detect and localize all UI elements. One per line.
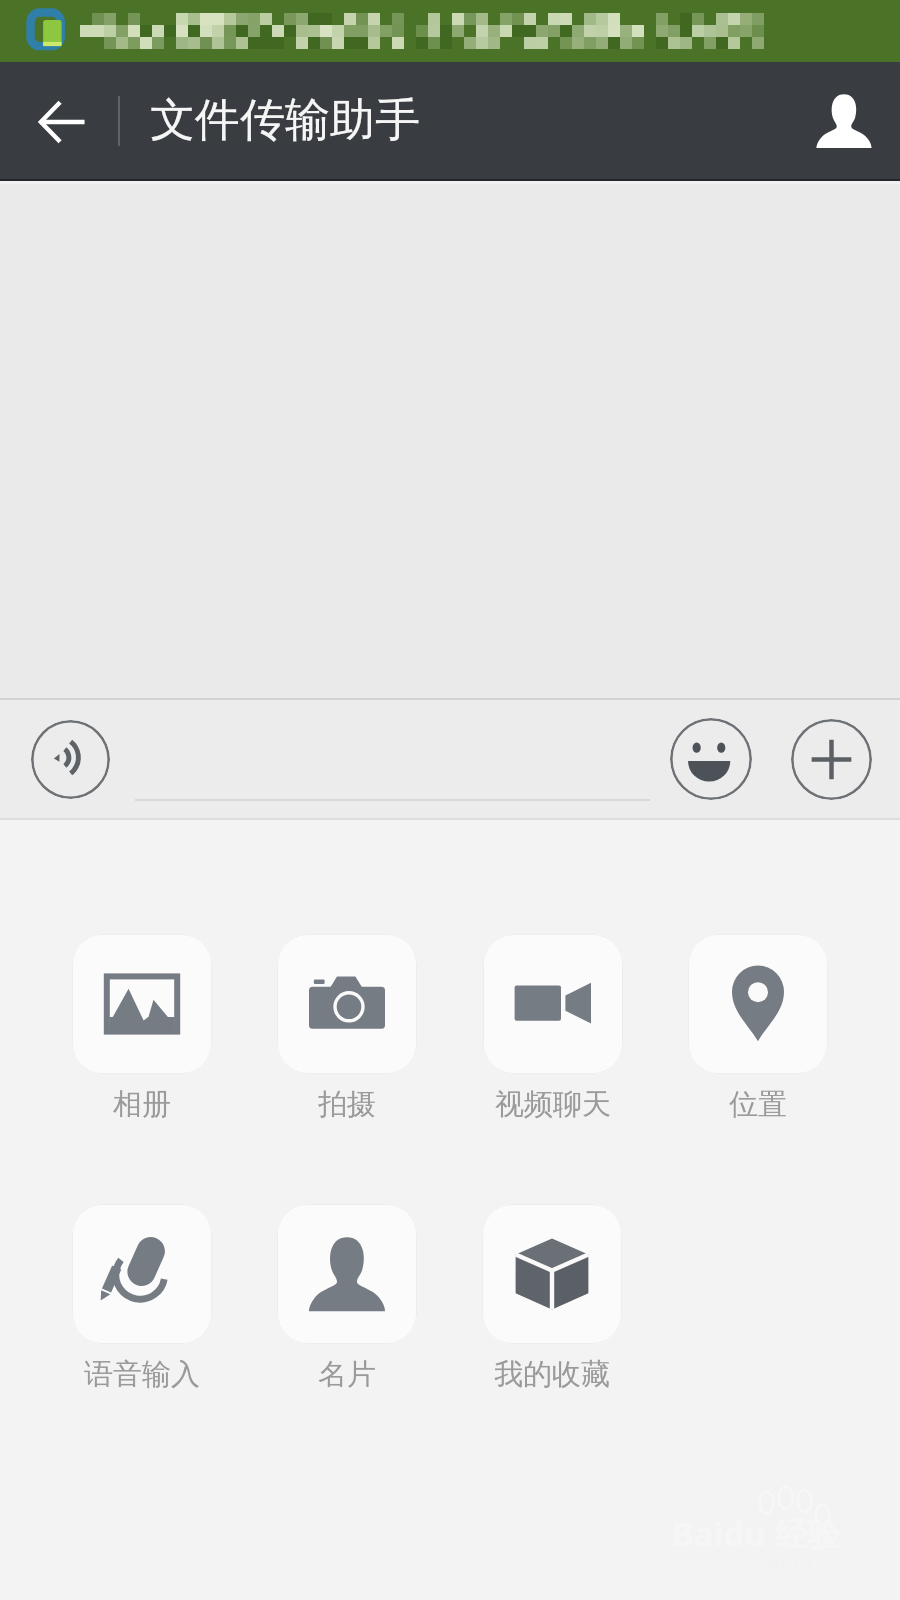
button[interactable]: Contact card: [277, 1204, 417, 1393]
button[interactable]: Chat info: [788, 62, 900, 179]
staticText: 视频聊天: [495, 1086, 611, 1123]
button[interactable]: Location: [688, 934, 828, 1123]
button[interactable]: Voice input: [72, 1204, 212, 1393]
button[interactable]: Voice message: [31, 720, 110, 799]
staticText: 语音输入: [84, 1356, 200, 1393]
staticText: 拍摄: [318, 1086, 376, 1123]
button[interactable]: Back: [0, 62, 118, 179]
staticText: 文件传输助手: [150, 92, 420, 149]
staticText: 相册: [113, 1086, 171, 1123]
button[interactable]: Emoji: [670, 718, 752, 800]
button[interactable]: Photo album: [72, 934, 212, 1123]
staticText: 位置: [729, 1086, 787, 1123]
button[interactable]: Video chat: [483, 934, 623, 1123]
staticText: 我的收藏: [494, 1356, 610, 1393]
button[interactable]: More options: [791, 719, 872, 800]
button[interactable]: Favorites: [482, 1204, 622, 1393]
staticText: 名片: [318, 1356, 376, 1393]
button[interactable]: Camera: [277, 934, 417, 1123]
